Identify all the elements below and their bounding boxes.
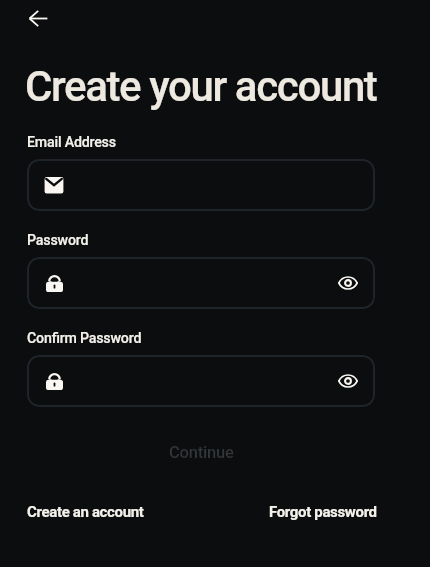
button[interactable]: Forgot password — [269, 503, 377, 521]
button[interactable]: Create an account — [27, 503, 144, 521]
button[interactable]: Show password — [327, 262, 369, 304]
button[interactable]: Continue — [27, 426, 375, 478]
button[interactable]: Show password — [27, 355, 375, 407]
staticText: Forgot password — [269, 503, 377, 521]
staticText: Create an account — [27, 503, 144, 521]
button[interactable]: Show password — [27, 257, 375, 309]
button[interactable]: Back — [20, 0, 56, 36]
button[interactable] — [27, 159, 375, 211]
staticText: Password — [27, 232, 89, 249]
button[interactable]: Show password — [327, 360, 369, 402]
staticText: Confirm Password — [27, 330, 142, 347]
staticText: Continue — [169, 443, 234, 462]
staticText: Email Address — [27, 134, 116, 151]
staticText: Create your account — [25, 62, 377, 111]
